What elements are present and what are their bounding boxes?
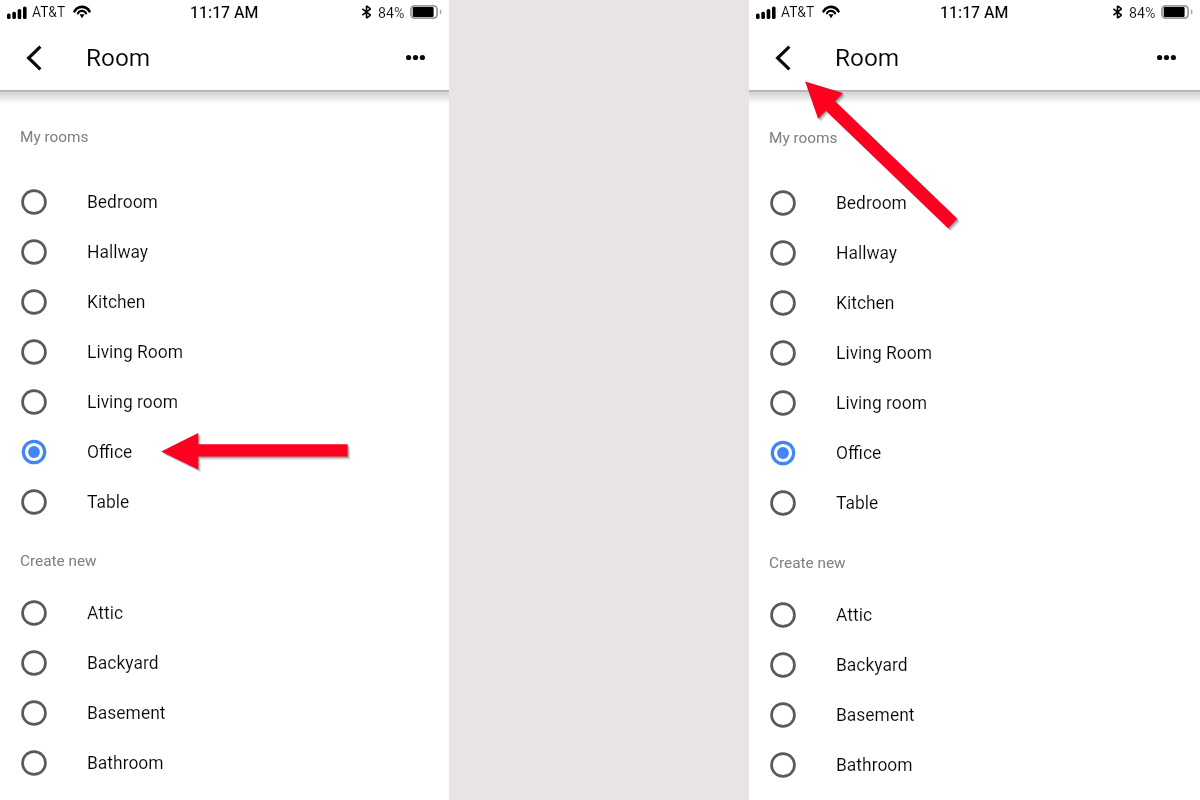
- staticText: Living room: [87, 392, 178, 412]
- button[interactable]: Attic: [0, 588, 449, 638]
- button[interactable]: Hallway: [749, 228, 1200, 278]
- staticText: Bedroom: [87, 192, 158, 212]
- button[interactable]: Kitchen: [0, 277, 449, 327]
- button[interactable]: More options: [395, 37, 435, 77]
- staticText: Create new: [769, 554, 846, 572]
- button[interactable]: Kitchen: [749, 278, 1200, 328]
- button[interactable]: Bathroom: [0, 738, 449, 788]
- staticText: Living Room: [87, 342, 183, 362]
- button[interactable]: Back: [762, 37, 803, 78]
- button[interactable]: Office: [749, 428, 1200, 478]
- staticText: Bathroom: [87, 753, 164, 773]
- staticText: AT&T: [32, 4, 66, 20]
- button[interactable]: Living Room: [0, 327, 449, 377]
- button[interactable]: Office: [0, 427, 449, 477]
- staticText: Room: [835, 43, 900, 72]
- button[interactable]: Basement: [749, 690, 1200, 740]
- button[interactable]: Bedroom: [0, 177, 449, 227]
- staticText: 84%: [378, 5, 405, 22]
- button[interactable]: Backyard: [0, 638, 449, 688]
- staticText: 11:17 AM: [940, 3, 1009, 22]
- staticText: 84%: [1129, 5, 1156, 22]
- button[interactable]: Table: [0, 477, 449, 527]
- button[interactable]: Bedroom: [749, 178, 1200, 228]
- staticText: Basement: [87, 703, 166, 723]
- staticText: Office: [836, 443, 882, 463]
- staticText: Attic: [87, 603, 124, 623]
- button[interactable]: Table: [749, 478, 1200, 528]
- button[interactable]: Living room: [749, 378, 1200, 428]
- staticText: Table: [836, 493, 879, 513]
- staticText: Attic: [836, 605, 873, 625]
- staticText: AT&T: [781, 4, 815, 20]
- staticText: Bathroom: [836, 755, 913, 775]
- staticText: Living Room: [836, 343, 932, 363]
- button[interactable]: Back: [13, 37, 54, 78]
- button[interactable]: Hallway: [0, 227, 449, 277]
- button[interactable]: Basement: [0, 688, 449, 738]
- staticText: 11:17 AM: [190, 3, 259, 22]
- staticText: Bedroom: [836, 193, 907, 213]
- staticText: Hallway: [87, 242, 149, 262]
- staticText: Room: [86, 43, 151, 72]
- staticText: Office: [87, 442, 133, 462]
- button[interactable]: Attic: [749, 590, 1200, 640]
- button[interactable]: Bathroom: [749, 740, 1200, 790]
- staticText: Kitchen: [87, 292, 146, 312]
- button[interactable]: Living Room: [749, 328, 1200, 378]
- staticText: Table: [87, 492, 130, 512]
- staticText: My rooms: [769, 129, 838, 147]
- staticText: Living room: [836, 393, 927, 413]
- button[interactable]: More options: [1146, 37, 1186, 77]
- staticText: Hallway: [836, 243, 898, 263]
- button[interactable]: Backyard: [749, 640, 1200, 690]
- staticText: Backyard: [836, 655, 908, 675]
- staticText: Kitchen: [836, 293, 895, 313]
- staticText: Basement: [836, 705, 915, 725]
- staticText: My rooms: [20, 128, 89, 146]
- button[interactable]: Living room: [0, 377, 449, 427]
- staticText: Backyard: [87, 653, 159, 673]
- staticText: Create new: [20, 552, 97, 570]
